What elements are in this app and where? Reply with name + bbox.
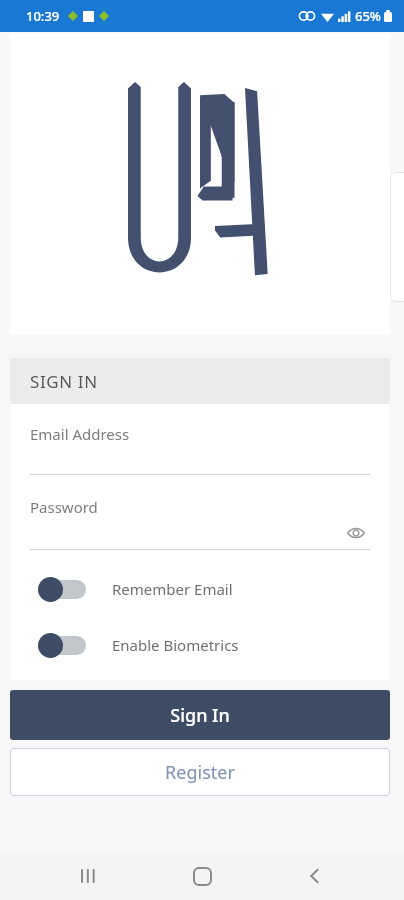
button[interactable]: Remember Email	[10, 576, 390, 602]
button[interactable]: Sign In	[10, 690, 390, 740]
button[interactable]: Register	[10, 748, 390, 796]
button[interactable]: Recent apps	[65, 852, 113, 900]
staticText: Remember Email	[112, 579, 233, 599]
staticText: Sign In	[170, 703, 230, 728]
button[interactable]: Back	[291, 852, 339, 900]
staticText: Register	[165, 760, 235, 785]
staticText: Password	[30, 497, 98, 517]
staticText: Email Address	[30, 424, 130, 444]
button[interactable]: Enable Biometrics	[10, 632, 390, 658]
button[interactable]: Show password	[342, 519, 370, 547]
staticText: SIGN IN	[30, 370, 98, 393]
staticText: 65%	[355, 7, 381, 25]
button[interactable]: Home	[178, 852, 226, 900]
staticText: 10:39	[26, 7, 60, 25]
staticText: Enable Biometrics	[112, 635, 239, 655]
